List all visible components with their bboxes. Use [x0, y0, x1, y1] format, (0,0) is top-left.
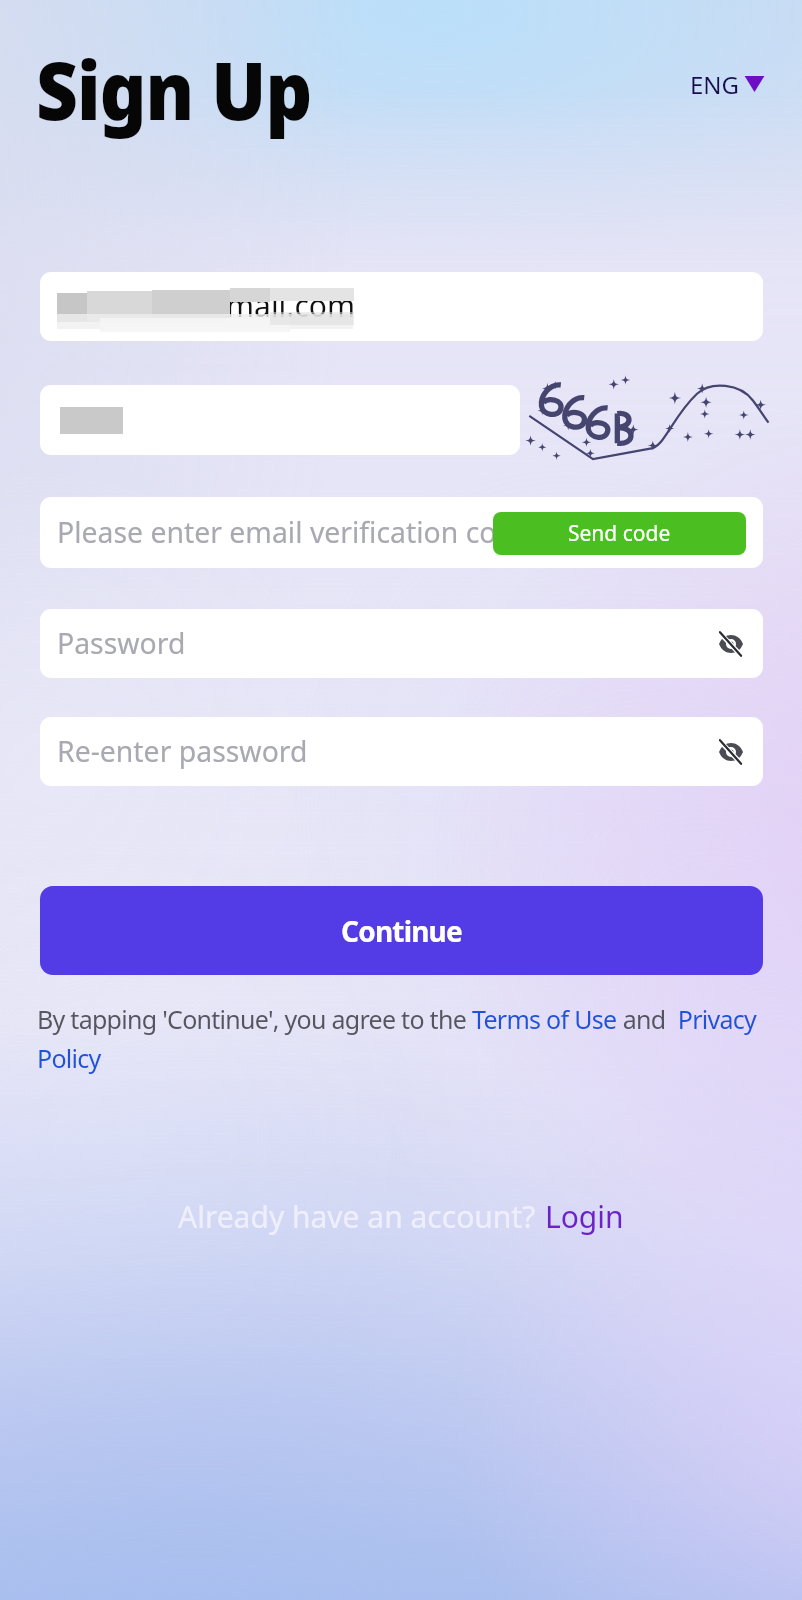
- staticText: Sign Up: [36, 36, 312, 144]
- button[interactable]: ENG: [686, 60, 769, 109]
- staticText: ENG: [690, 68, 740, 101]
- button[interactable]: Please enter email verification code: [40, 497, 763, 568]
- button[interactable]: mail.com: [40, 272, 763, 341]
- button[interactable]: Login: [544, 1196, 625, 1237]
- staticText: Policy: [37, 1041, 101, 1075]
- staticText: Continue: [341, 912, 462, 950]
- button[interactable]: Policy: [37, 1041, 101, 1075]
- staticText: Password: [57, 624, 186, 663]
- staticText: Send code: [568, 519, 671, 548]
- button[interactable]: Continue: [40, 886, 763, 975]
- button[interactable]: Send code: [493, 512, 746, 555]
- staticText: Privacy: [672, 1002, 757, 1036]
- staticText: Login: [545, 1196, 624, 1237]
- staticText: Re-enter password: [57, 732, 308, 771]
- button[interactable]: Password: [40, 609, 763, 678]
- staticText: Already have an account?: [178, 1196, 544, 1237]
- button[interactable]: Re-enter password: [40, 717, 763, 786]
- staticText: Terms of Use: [472, 1002, 617, 1036]
- button[interactable]: Terms of Use: [472, 1002, 617, 1036]
- staticText: mail.com: [226, 285, 355, 326]
- button[interactable]: [40, 385, 520, 455]
- button[interactable]: Toggle password visibility: [708, 621, 753, 666]
- staticText: By tapping 'Continue', you agree to the: [37, 1002, 472, 1036]
- button[interactable]: Privacy: [672, 1002, 757, 1036]
- button[interactable]: Toggle password visibility: [708, 729, 753, 774]
- staticText: and: [617, 1002, 672, 1036]
- staticText: Please enter email verification code: [57, 513, 530, 552]
